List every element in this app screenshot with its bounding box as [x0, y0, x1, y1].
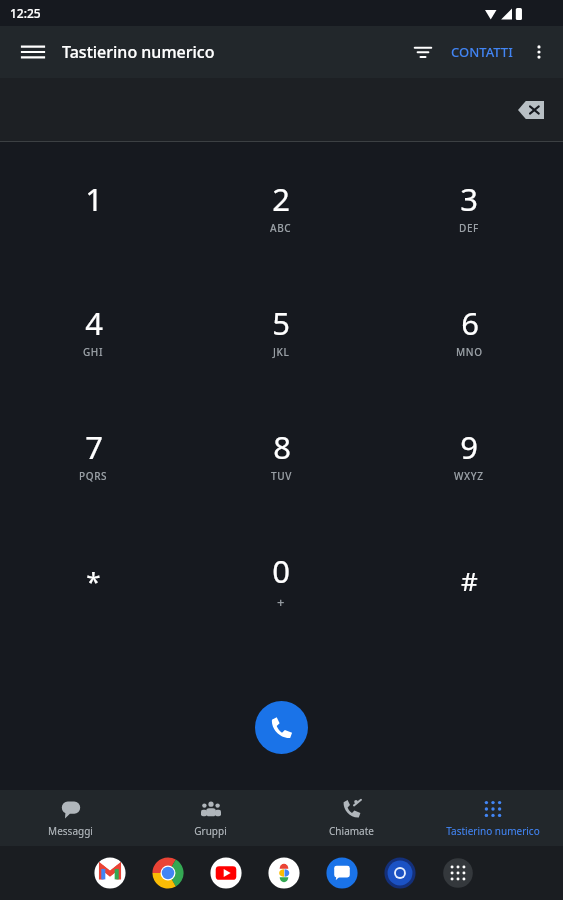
staticText: 3: [460, 178, 478, 220]
staticText: 1: [85, 178, 103, 220]
button[interactable]: YouTube: [207, 854, 245, 892]
staticText: 9: [460, 426, 478, 468]
staticText: Messaggi: [48, 824, 93, 838]
staticText: 8: [273, 426, 291, 468]
staticText: CONTATTI: [451, 43, 513, 61]
staticText: JKL: [273, 345, 290, 359]
staticText: #: [461, 563, 478, 598]
staticText: Tastierino numerico: [62, 41, 215, 63]
staticText: 5: [272, 302, 290, 344]
staticText: 0: [272, 550, 290, 592]
button[interactable]: More options: [519, 32, 559, 72]
button[interactable]: Gruppi: [140, 790, 281, 846]
staticText: ABC: [270, 221, 292, 235]
button[interactable]: App: [381, 854, 419, 892]
button[interactable]: Messaggi: [0, 790, 140, 846]
staticText: PQRS: [79, 469, 108, 483]
button[interactable]: 0: [187, 550, 375, 674]
button[interactable]: 8: [187, 426, 375, 550]
button[interactable]: Chiamate: [281, 790, 422, 846]
staticText: 6: [461, 302, 479, 344]
button[interactable]: 1: [0, 178, 187, 302]
button[interactable]: Gmail: [91, 854, 129, 892]
button[interactable]: 6: [375, 302, 563, 426]
button[interactable]: Backspace: [509, 88, 553, 132]
button[interactable]: 9: [375, 426, 563, 550]
staticText: 4: [85, 302, 103, 344]
button[interactable]: *: [0, 550, 187, 674]
staticText: +: [277, 593, 286, 611]
staticText: Gruppi: [194, 824, 227, 838]
button[interactable]: Chrome: [149, 854, 187, 892]
staticText: 2: [272, 178, 290, 220]
button[interactable]: Open navigation menu: [10, 29, 56, 75]
staticText: Chiamate: [329, 824, 374, 838]
staticText: TUV: [271, 469, 292, 483]
staticText: GHI: [83, 345, 104, 359]
staticText: WXYZ: [454, 469, 484, 483]
button[interactable]: Messages: [323, 854, 361, 892]
button[interactable]: 4: [0, 302, 187, 426]
staticText: 12:25: [10, 5, 41, 21]
button[interactable]: Tastierino numerico: [422, 790, 563, 846]
button[interactable]: #: [375, 550, 563, 674]
button[interactable]: 5: [187, 302, 375, 426]
staticText: 7: [85, 426, 103, 468]
staticText: Tastierino numerico: [446, 824, 540, 838]
button[interactable]: Filter: [401, 30, 445, 74]
button[interactable]: 2: [187, 178, 375, 302]
staticText: MNO: [456, 345, 483, 359]
staticText: DEF: [459, 221, 479, 235]
button[interactable]: 7: [0, 426, 187, 550]
staticText: *: [86, 563, 101, 598]
button[interactable]: 3: [375, 178, 563, 302]
button[interactable]: Google Photos: [265, 854, 303, 892]
button[interactable]: All apps: [439, 854, 477, 892]
button[interactable]: CONTATTI: [445, 37, 519, 67]
button[interactable]: Call: [255, 701, 308, 754]
